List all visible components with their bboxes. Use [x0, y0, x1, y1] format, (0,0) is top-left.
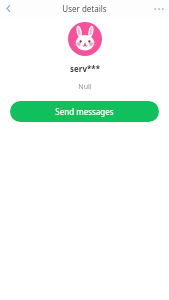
button[interactable]: More options: [149, 0, 169, 17]
staticText: Null: [78, 82, 92, 92]
staticText: User details: [62, 3, 107, 14]
button[interactable]: Back: [0, 0, 17, 17]
staticText: serv***: [70, 63, 100, 74]
staticText: Send messages: [55, 106, 114, 117]
button[interactable]: Profile avatar: [68, 22, 102, 56]
button[interactable]: Send messages: [10, 101, 159, 122]
